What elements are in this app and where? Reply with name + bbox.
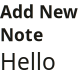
staticText: Hello (0, 46, 56, 76)
staticText: Add New Note (0, 0, 78, 46)
